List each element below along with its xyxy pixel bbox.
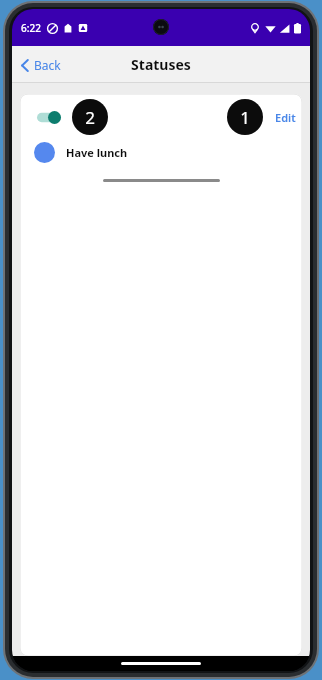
button[interactable]: Step 1 (227, 99, 263, 135)
staticText: 6:22 (21, 21, 41, 35)
button[interactable]: Toggle status (34, 108, 64, 127)
button[interactable]: Step 2 (72, 99, 108, 135)
button[interactable]: Edit (269, 104, 302, 131)
button[interactable]: Have lunch (20, 140, 302, 169)
staticText: Have lunch (66, 145, 128, 160)
staticText: 2 (85, 106, 95, 129)
staticText: Back (34, 57, 61, 73)
staticText: 1 (240, 106, 250, 129)
button[interactable]: Back (12, 51, 71, 79)
staticText: Statuses (131, 55, 191, 74)
staticText: Edit (275, 110, 296, 125)
